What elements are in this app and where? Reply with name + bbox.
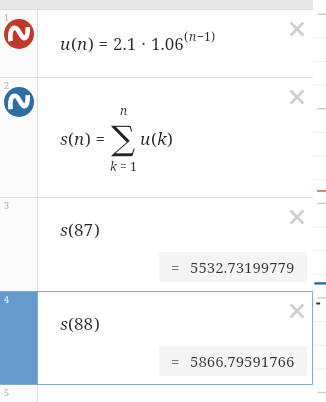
staticText: n xyxy=(77,32,88,55)
staticText: · xyxy=(137,32,151,55)
staticText: = xyxy=(171,257,180,277)
button[interactable]: 2 xyxy=(0,78,313,197)
staticText: ) xyxy=(94,312,100,335)
staticText: k xyxy=(157,127,167,150)
staticText: ) xyxy=(94,218,100,241)
button[interactable]: 1 xyxy=(0,10,38,77)
staticText: ) xyxy=(88,32,94,55)
staticText: s xyxy=(60,312,68,335)
staticText: 5 xyxy=(4,386,10,398)
staticText: 4 xyxy=(4,293,10,305)
staticText: ( xyxy=(68,312,74,335)
staticText: 87 xyxy=(74,218,94,241)
staticText: − xyxy=(197,28,204,44)
button[interactable]: = xyxy=(159,252,307,282)
staticText: ) xyxy=(85,127,91,150)
staticText: ( xyxy=(68,218,74,241)
staticText: 5866.79591766 xyxy=(190,351,295,371)
button[interactable]: = xyxy=(159,346,307,376)
button[interactable]: Delete expression 4 xyxy=(287,301,307,321)
button[interactable]: Delete expression 2 xyxy=(287,87,307,107)
staticText: ) xyxy=(167,127,173,150)
staticText: s xyxy=(60,218,68,241)
button[interactable]: 4 xyxy=(0,292,313,384)
staticText: n xyxy=(74,127,85,150)
button[interactable]: Toggle graph xyxy=(4,87,34,117)
staticText: ( xyxy=(68,127,74,150)
staticText: 1 xyxy=(204,28,211,44)
staticText: 2.1 xyxy=(113,32,137,55)
staticText: = xyxy=(94,32,113,55)
staticText: k xyxy=(110,158,117,174)
staticText: ∑ xyxy=(111,118,136,158)
staticText: 1.06 xyxy=(151,32,184,55)
staticText: n xyxy=(189,28,197,44)
staticText: ( xyxy=(71,32,77,55)
button[interactable]: Delete expression 1 xyxy=(287,19,307,39)
staticText: s xyxy=(60,127,68,150)
staticText: = xyxy=(91,127,110,150)
staticText: 2 xyxy=(4,79,10,91)
button[interactable]: 4 xyxy=(0,292,38,384)
button[interactable]: 3 xyxy=(0,198,38,291)
button[interactable]: 3 xyxy=(0,198,313,291)
staticText: ( xyxy=(184,28,189,44)
staticText: 1 xyxy=(130,158,137,174)
button[interactable]: 1 xyxy=(0,10,313,77)
button[interactable]: 5 xyxy=(0,385,313,402)
button[interactable]: Toggle graph xyxy=(4,19,34,49)
staticText: = xyxy=(171,351,180,371)
staticText: u xyxy=(140,127,151,150)
staticText: n xyxy=(120,102,128,118)
staticText: 1 xyxy=(4,11,10,23)
staticText: 88 xyxy=(74,312,94,335)
staticText: = xyxy=(117,158,130,174)
staticText: ) xyxy=(211,28,216,44)
staticText: ( xyxy=(151,127,157,150)
button[interactable]: 2 xyxy=(0,78,38,197)
staticText: 5532.73199779 xyxy=(190,257,295,277)
staticText: 3 xyxy=(4,199,10,211)
staticText: u xyxy=(60,32,71,55)
button[interactable]: Delete expression 3 xyxy=(287,207,307,227)
